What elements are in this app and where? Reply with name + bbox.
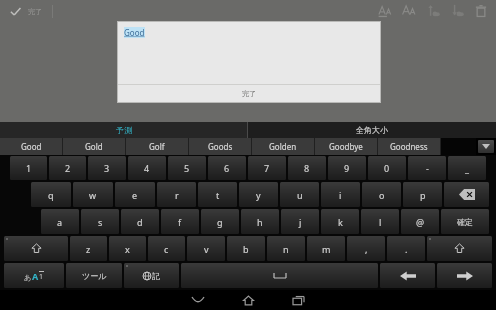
button[interactable]: 全角大小 [248,122,496,138]
button[interactable]: u [280,182,319,207]
button[interactable]: . [387,236,425,261]
button[interactable]: m [307,236,345,261]
button[interactable]: 1 [10,156,47,180]
button[interactable]: Download [448,2,466,20]
button[interactable]: b [227,236,265,261]
button[interactable]: s [81,209,119,234]
button[interactable]: o [362,182,401,207]
button[interactable] [4,236,68,261]
button[interactable]: Good [0,138,62,155]
button[interactable]: y [239,182,278,207]
button[interactable]: a [41,209,79,234]
staticText: Golden [269,141,297,152]
button[interactable]: Golden [252,138,314,155]
button[interactable]: e [115,182,155,207]
button[interactable]: , [347,236,385,261]
button[interactable]: 確定 [441,209,489,234]
staticText: 1 [39,272,44,282]
button[interactable]: g [201,209,239,234]
staticText: 6 [224,162,230,174]
button[interactable]: r [157,182,196,207]
staticText: g [217,216,223,228]
button[interactable]: 6 [208,156,246,180]
button[interactable]: t [198,182,237,207]
button[interactable]: 8 [288,156,326,180]
button[interactable]: Delete [472,2,490,20]
staticText: x [125,243,130,255]
button[interactable]: d [121,209,159,234]
button[interactable]: ツール [66,263,122,288]
button[interactable]: More suggestions [478,140,494,153]
button[interactable]: Goods [189,138,251,155]
staticText: u [297,189,303,201]
button[interactable]: n [267,236,305,261]
button[interactable]: Goodness [378,138,440,155]
staticText: d [137,216,143,228]
staticText: Goodbye [329,141,363,152]
button[interactable] [444,182,489,207]
button[interactable]: 0 [368,156,406,180]
button[interactable]: _ [448,156,486,180]
staticText: 予測 [116,125,132,135]
staticText: t [216,189,220,201]
staticText: @ [416,216,425,228]
button[interactable]: Decrease text size [376,2,394,20]
staticText: i [339,189,342,201]
button[interactable]: Home [223,290,273,310]
staticText: o [379,189,385,201]
button[interactable]: f [161,209,199,234]
staticText: v [204,243,209,255]
staticText: 確定 [457,217,473,227]
button[interactable]: 9 [328,156,366,180]
button[interactable]: 7 [248,156,286,180]
staticText: m [322,243,331,255]
staticText: 1 [26,162,32,174]
button[interactable]: Done [6,2,24,20]
button[interactable]: 記 [124,263,179,288]
button[interactable]: Upload [424,2,442,20]
button[interactable]: Gold [63,138,125,155]
button[interactable]: v [187,236,225,261]
button[interactable]: h [241,209,279,234]
button[interactable] [437,263,492,288]
button[interactable]: j [281,209,319,234]
button[interactable]: 5 [168,156,206,180]
staticText: 9 [344,162,350,174]
staticText: w [89,189,97,201]
button[interactable]: 予測 [0,122,247,138]
button[interactable]: Recent apps [273,290,323,310]
button[interactable]: c [148,236,185,261]
button[interactable]: Goodbye [315,138,377,155]
button[interactable]: x [109,236,146,261]
button[interactable]: q [31,182,71,207]
staticText: A [32,270,39,282]
button[interactable]: i [321,182,360,207]
staticText: 完了 [28,7,42,16]
button[interactable]: あ [4,263,64,288]
staticText: n [283,243,289,255]
button[interactable]: w [73,182,113,207]
button[interactable]: p [403,182,442,207]
button[interactable]: 完了 [118,85,380,102]
staticText: ツール [82,271,107,281]
staticText: 7 [264,162,270,174]
button[interactable] [181,263,378,288]
button[interactable]: Hide keyboard [173,290,223,310]
staticText: _ [465,162,469,174]
button[interactable]: Increase text size [400,2,418,20]
staticText: - [426,162,429,174]
button[interactable]: - [408,156,446,180]
button[interactable] [427,236,492,261]
staticText: Golf [149,141,165,152]
staticText: 5 [184,162,190,174]
button[interactable]: k [321,209,359,234]
button[interactable]: Golf [126,138,188,155]
button[interactable]: 4 [128,156,166,180]
button[interactable]: l [361,209,399,234]
button[interactable] [380,263,435,288]
button[interactable]: 2 [49,156,86,180]
staticText: y [256,189,261,201]
button[interactable]: 3 [88,156,126,180]
button[interactable]: z [70,236,107,261]
button[interactable]: @ [401,209,439,234]
